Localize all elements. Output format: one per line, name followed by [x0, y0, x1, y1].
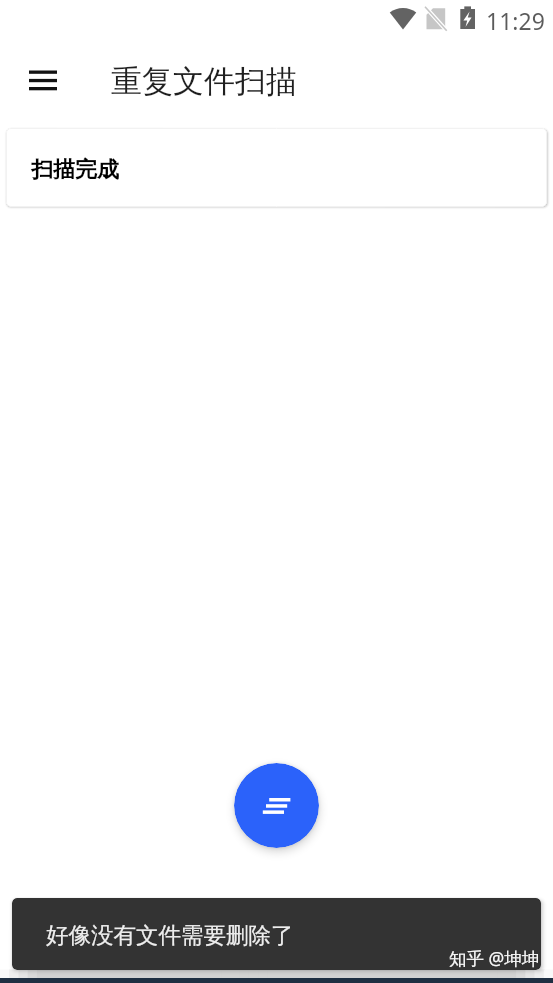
- staticText: 11:29: [486, 5, 545, 36]
- button[interactable]: Sort files: [234, 763, 319, 848]
- staticText: 好像没有文件需要删除了: [46, 921, 294, 949]
- staticText: 知乎 @坤坤: [449, 946, 540, 970]
- button[interactable]: 好像没有文件需要删除了: [12, 898, 541, 970]
- staticText: 重复文件扫描: [111, 62, 297, 101]
- button[interactable]: Menu: [14, 51, 72, 109]
- button[interactable]: 扫描完成: [6, 128, 547, 207]
- staticText: 扫描完成: [31, 156, 119, 184]
